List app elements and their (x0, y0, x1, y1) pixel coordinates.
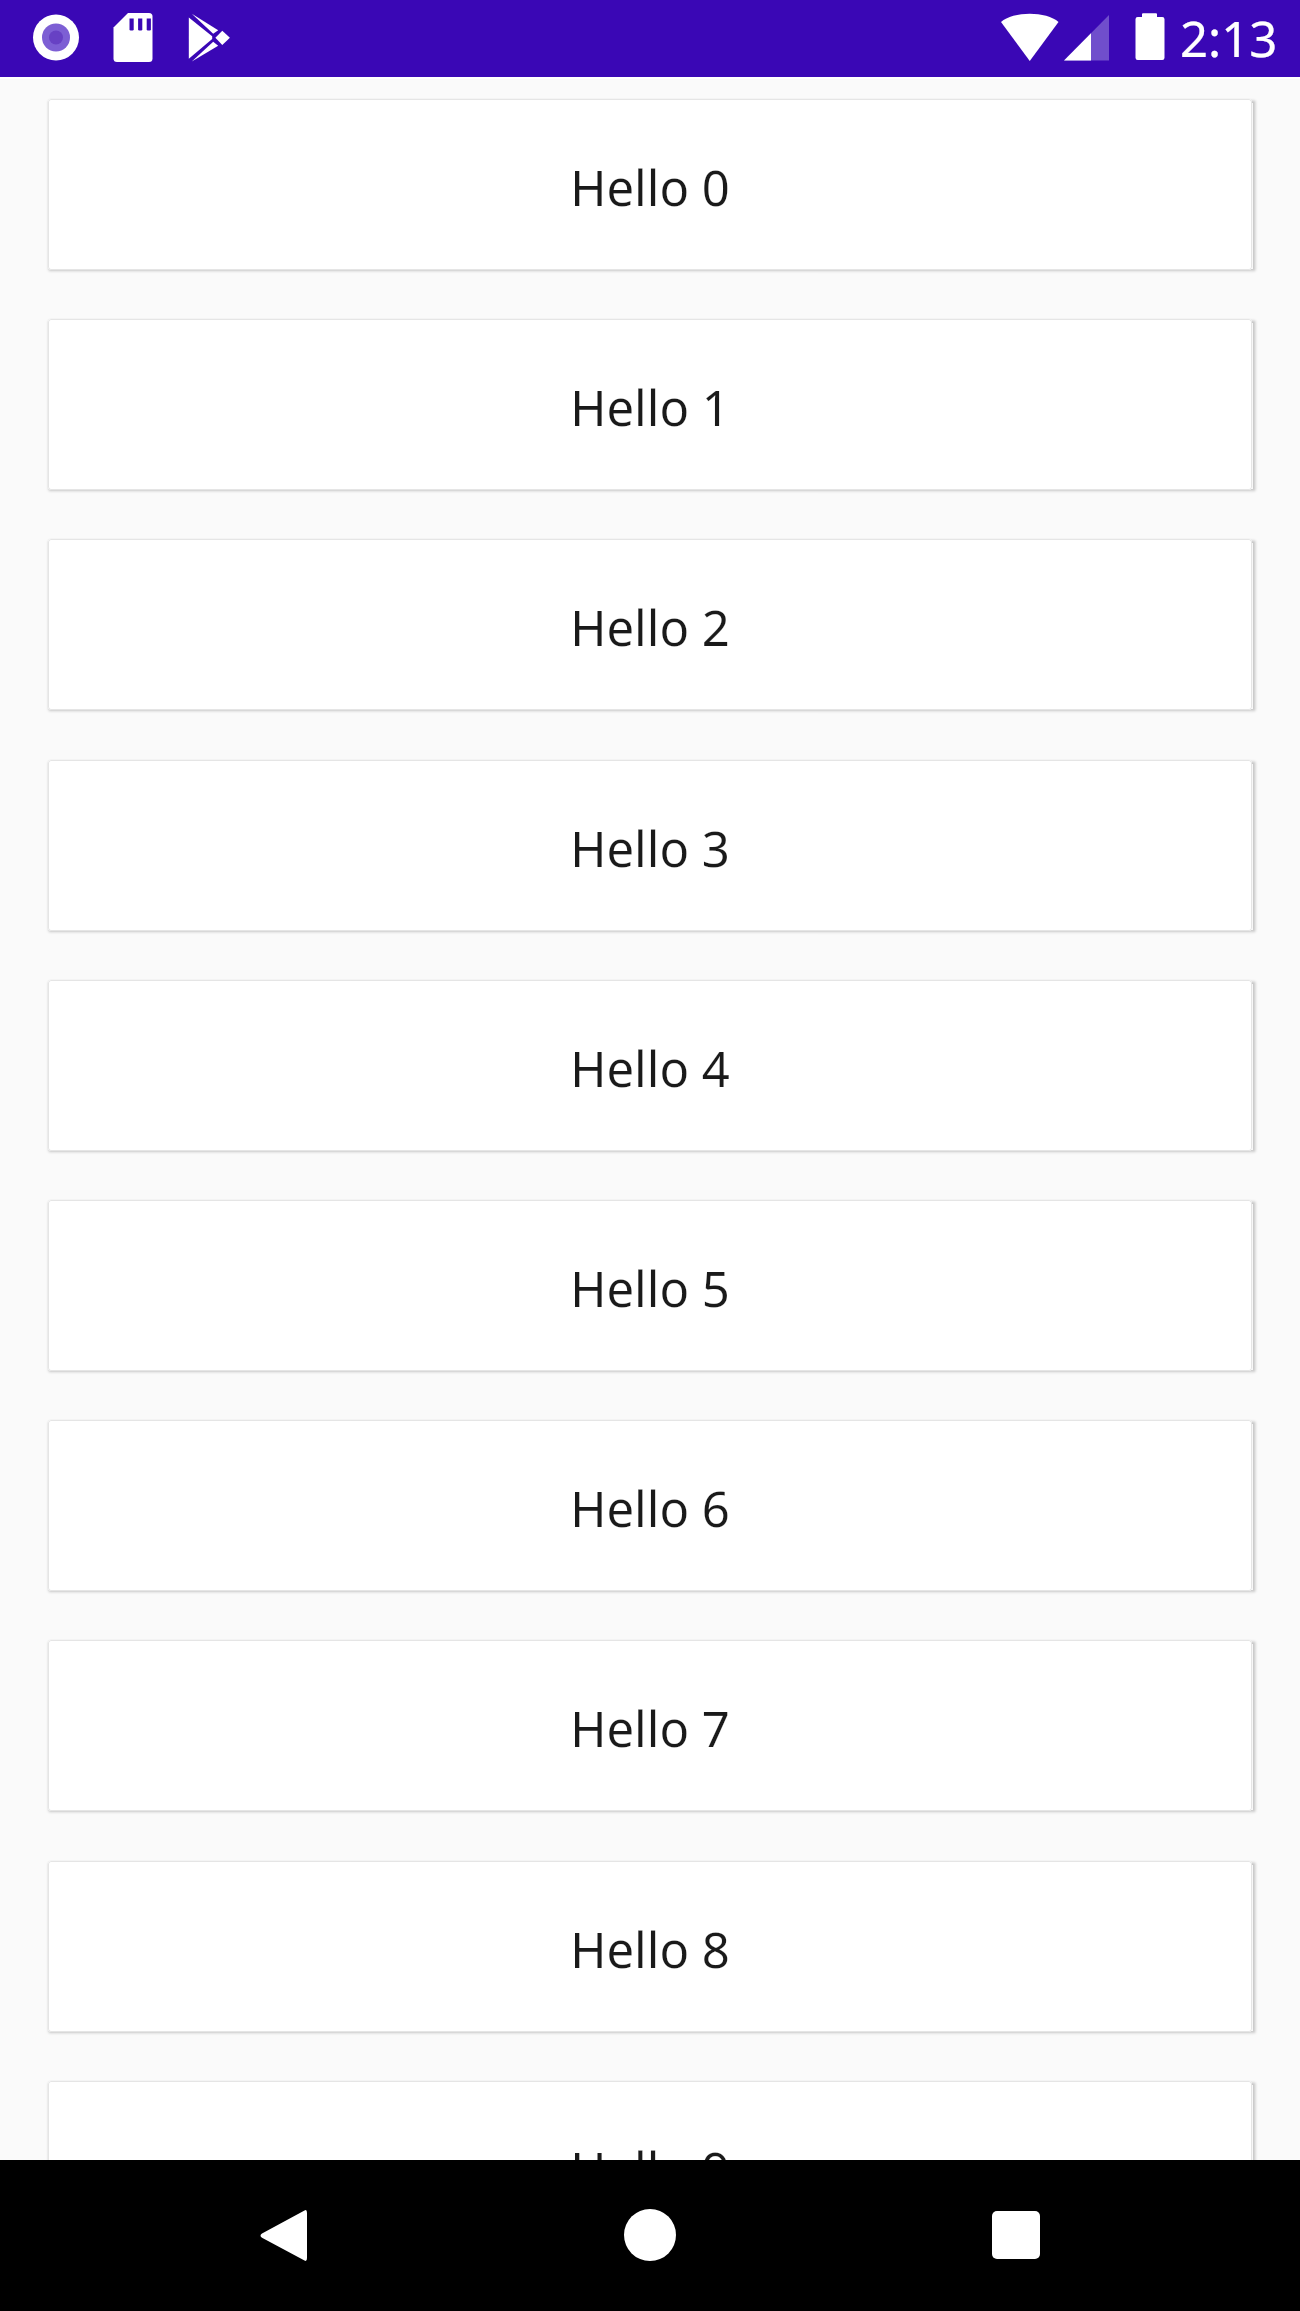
button[interactable]: Hello 0 (48, 99, 1252, 270)
button[interactable]: Hello 5 (48, 1200, 1252, 1371)
staticText: Hello 6 (570, 1475, 730, 1542)
button[interactable]: Hello 8 (48, 1861, 1252, 2032)
staticText: Hello 3 (570, 815, 730, 882)
button[interactable]: Hello 3 (48, 760, 1252, 931)
button[interactable]: Hello 7 (48, 1640, 1252, 1811)
button[interactable]: Hello 6 (48, 1420, 1252, 1591)
staticText: 2:13 (1180, 5, 1278, 72)
button[interactable]: Recent apps (961, 2180, 1071, 2290)
staticText: Hello 8 (570, 1916, 730, 1983)
button[interactable]: Hello 4 (48, 980, 1252, 1151)
staticText: Hello 2 (570, 594, 730, 661)
button[interactable]: Hello 9 (48, 2081, 1252, 2160)
button[interactable]: Home (595, 2180, 705, 2290)
staticText: Hello 1 (570, 374, 730, 441)
button[interactable]: Back (228, 2180, 338, 2290)
staticText: Hello 9 (570, 2136, 730, 2160)
staticText: Hello 7 (570, 1695, 730, 1762)
staticText: Hello 0 (570, 154, 730, 221)
button[interactable]: Hello 2 (48, 539, 1252, 710)
staticText: Hello 4 (570, 1035, 730, 1102)
button[interactable]: Hello 1 (48, 319, 1252, 490)
staticText: Hello 5 (570, 1255, 730, 1322)
